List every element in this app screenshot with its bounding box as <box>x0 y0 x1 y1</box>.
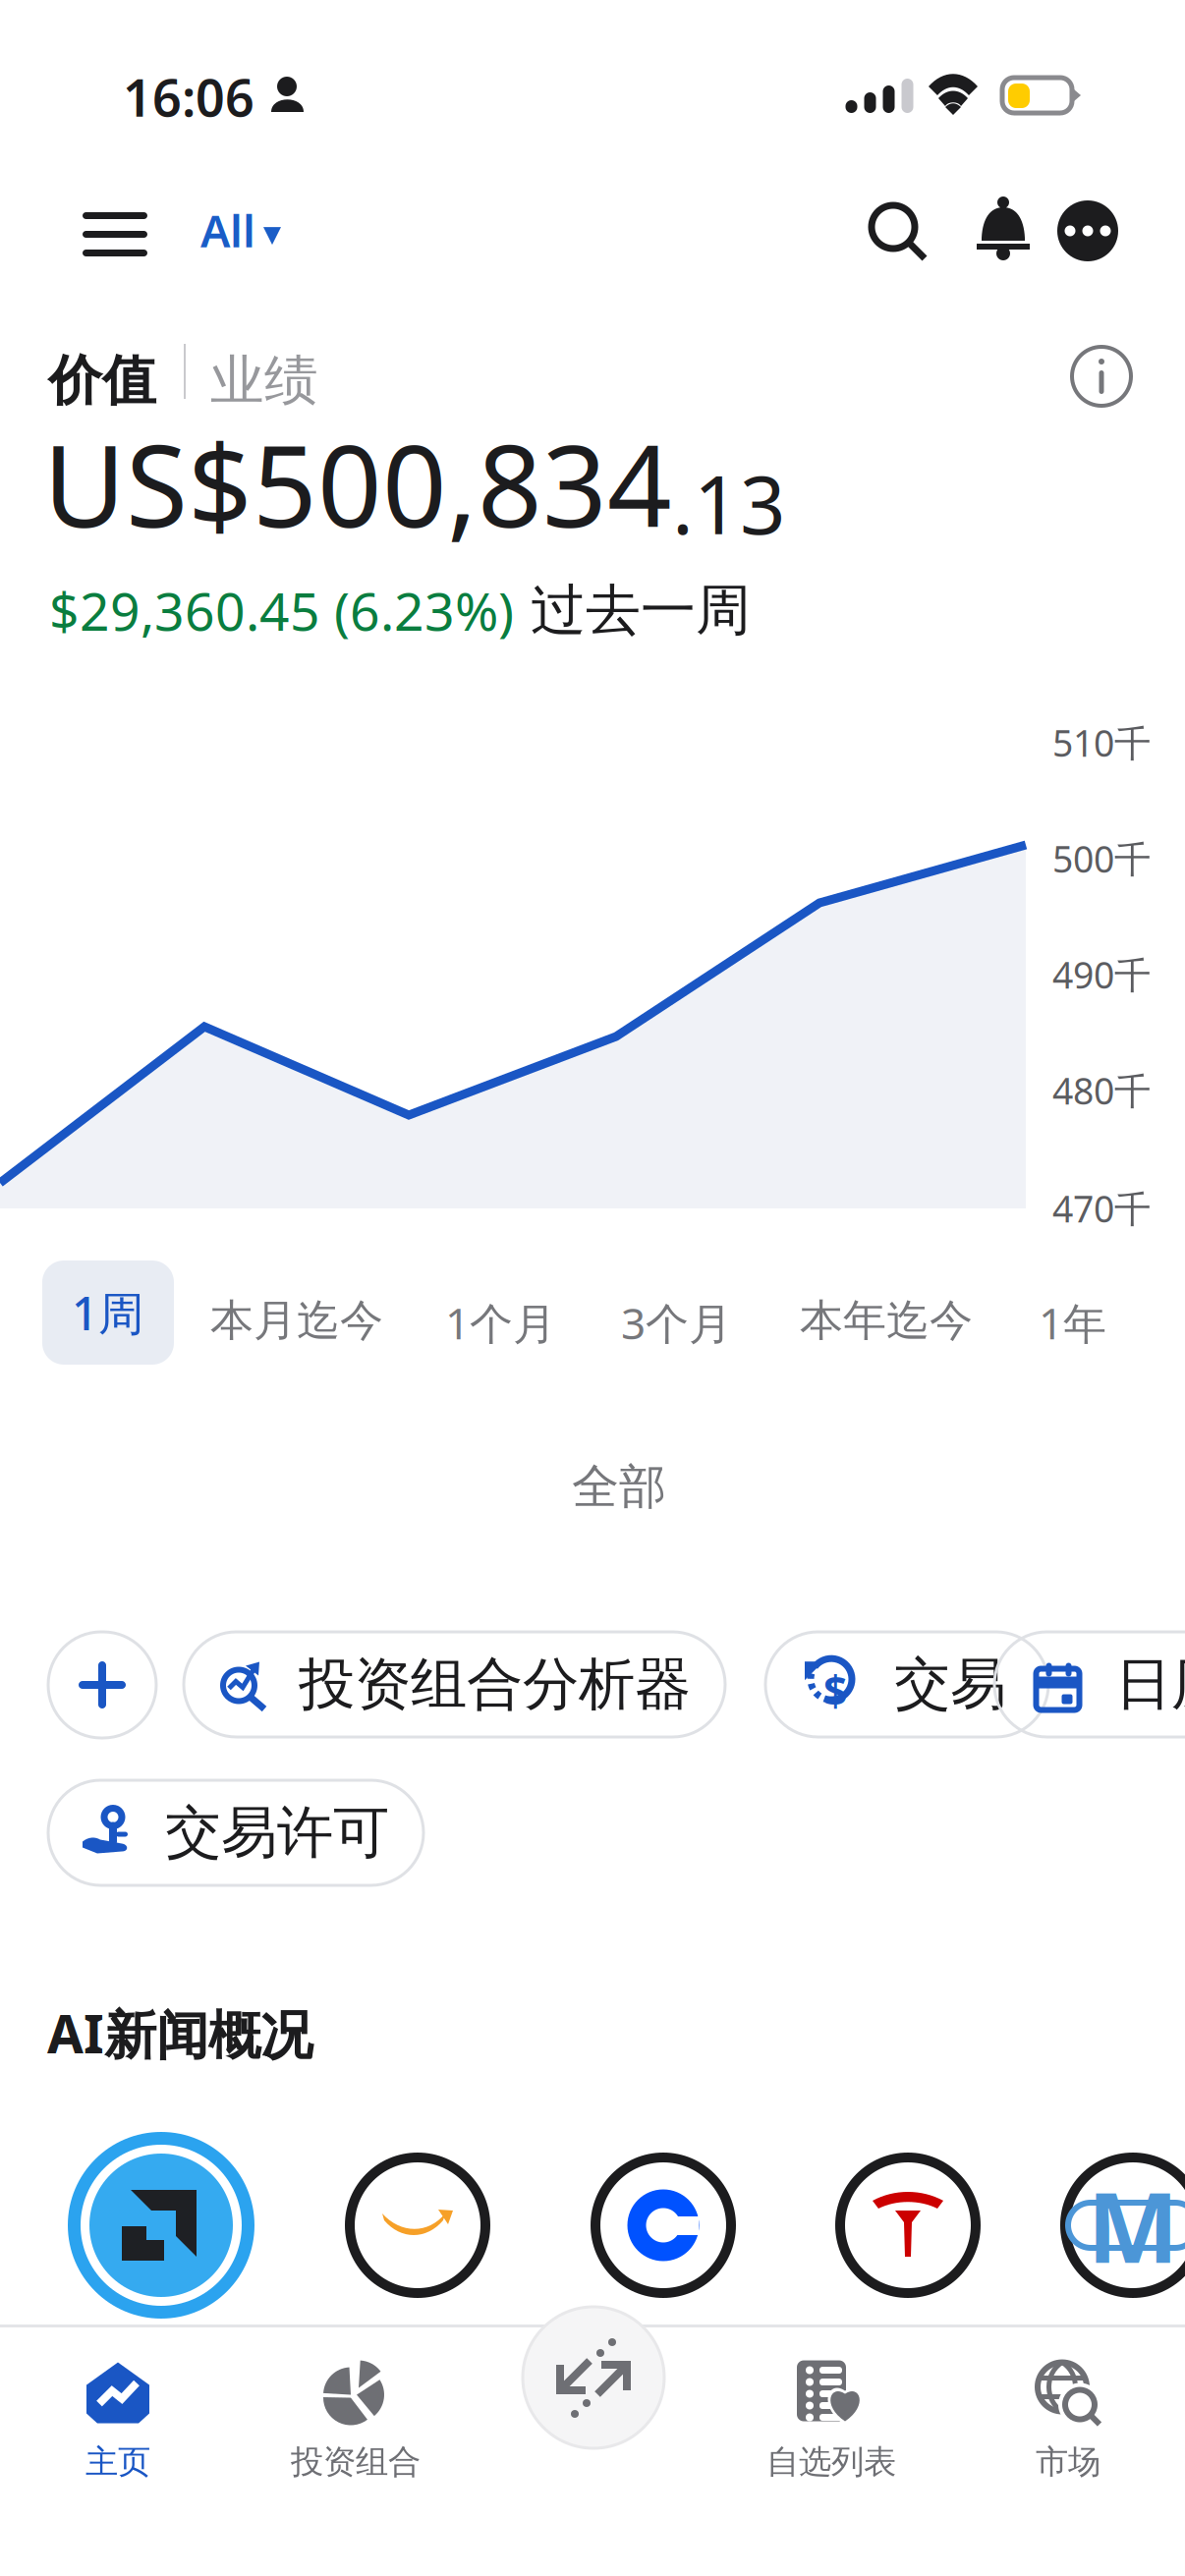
button[interactable]: All <box>187 175 295 285</box>
button[interactable]: 日历 <box>994 1632 1185 1737</box>
button[interactable]: Search <box>849 183 945 279</box>
staticText: 480千 <box>1052 1066 1151 1115</box>
staticText: 本年迄今 <box>800 1294 973 1347</box>
staticText: AI新闻概况 <box>47 1998 312 2068</box>
button[interactable]: 市场 <box>950 2329 1185 2512</box>
button[interactable]: 全部 <box>546 1440 692 1534</box>
button[interactable]: Menu <box>61 184 169 285</box>
button[interactable]: 本月迄今 <box>197 1272 397 1369</box>
staticText: .13 <box>672 450 786 556</box>
button[interactable]: 自选列表 <box>713 2329 949 2512</box>
staticText: 1周 <box>72 1282 144 1343</box>
staticText: 过去一周 <box>514 577 751 644</box>
button[interactable]: Add <box>48 1632 156 1738</box>
button[interactable]: 1周 <box>42 1260 174 1365</box>
staticText: 470千 <box>1052 1184 1151 1233</box>
button[interactable]: Tesla <box>835 2153 981 2298</box>
button[interactable]: 1个月 <box>431 1272 570 1373</box>
staticText: 市场 <box>1036 2442 1100 2482</box>
button[interactable]: 价值 <box>48 338 156 424</box>
staticText: 490千 <box>1052 950 1151 999</box>
staticText: 日历 <box>1115 1650 1185 1719</box>
staticText: 价值 <box>48 348 156 414</box>
button[interactable]: Marvell <box>1060 2153 1185 2298</box>
staticText: 3个月 <box>621 1294 732 1351</box>
staticText: $29,360.45 (6.23%) <box>49 576 514 645</box>
button[interactable]: 投资组合分析器 <box>184 1632 725 1737</box>
staticText: 1个月 <box>445 1294 556 1351</box>
button[interactable]: 主页 <box>0 2329 236 2512</box>
staticText: 500千 <box>1052 834 1151 883</box>
button[interactable]: More <box>1042 185 1134 277</box>
staticText: 投资组合分析器 <box>299 1650 691 1719</box>
staticText: 主页 <box>85 2442 150 2482</box>
staticText: US$500,834 <box>43 409 672 558</box>
button[interactable]: Coinbase <box>591 2153 736 2298</box>
button[interactable]: 业绩 <box>210 338 318 424</box>
staticText: 交易 <box>894 1650 1006 1719</box>
staticText: M <box>1087 2161 1179 2290</box>
staticText: 业绩 <box>210 348 318 414</box>
button[interactable]: 投资组合 <box>238 2329 474 2512</box>
staticText: 投资组合 <box>291 2442 421 2482</box>
button[interactable]: Expand <box>522 2306 665 2449</box>
staticText: $ <box>823 1663 847 1718</box>
button[interactable]: 1年 <box>1025 1272 1120 1373</box>
staticText: 全部 <box>572 1458 666 1516</box>
staticText: 交易许可 <box>165 1798 389 1867</box>
staticText: 本月迄今 <box>210 1294 383 1347</box>
staticText: All <box>200 200 255 260</box>
staticText: 自选列表 <box>766 2442 896 2482</box>
button[interactable]: 交易许可 <box>48 1780 423 1885</box>
staticText: 16:06 <box>123 63 254 131</box>
button[interactable]: Amazon <box>345 2153 490 2298</box>
button[interactable]: Information <box>1070 345 1133 408</box>
staticText: 1年 <box>1039 1294 1106 1351</box>
button[interactable]: $ <box>765 1632 1048 1737</box>
button[interactable]: Notifications <box>959 179 1047 278</box>
staticText: 510千 <box>1052 718 1151 767</box>
button[interactable]: 本年迄今 <box>786 1272 987 1369</box>
button[interactable]: 3个月 <box>607 1272 746 1373</box>
button[interactable]: AMD <box>68 2132 254 2319</box>
